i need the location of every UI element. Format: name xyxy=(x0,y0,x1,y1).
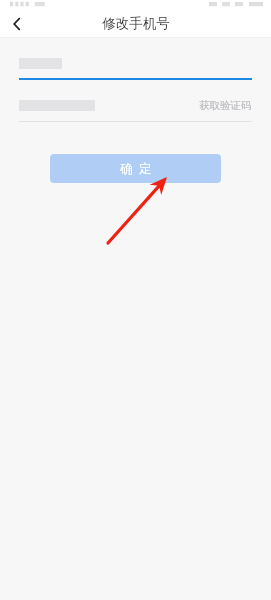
staticText: 获取验证码 xyxy=(199,99,252,112)
staticText: 修改手机号 xyxy=(102,15,170,32)
staticText: 确 定 xyxy=(120,160,152,177)
button[interactable]: Back xyxy=(0,10,34,37)
button[interactable] xyxy=(0,49,271,78)
button[interactable]: 获取验证码 xyxy=(199,99,252,112)
button[interactable]: 确 定 xyxy=(50,154,221,183)
